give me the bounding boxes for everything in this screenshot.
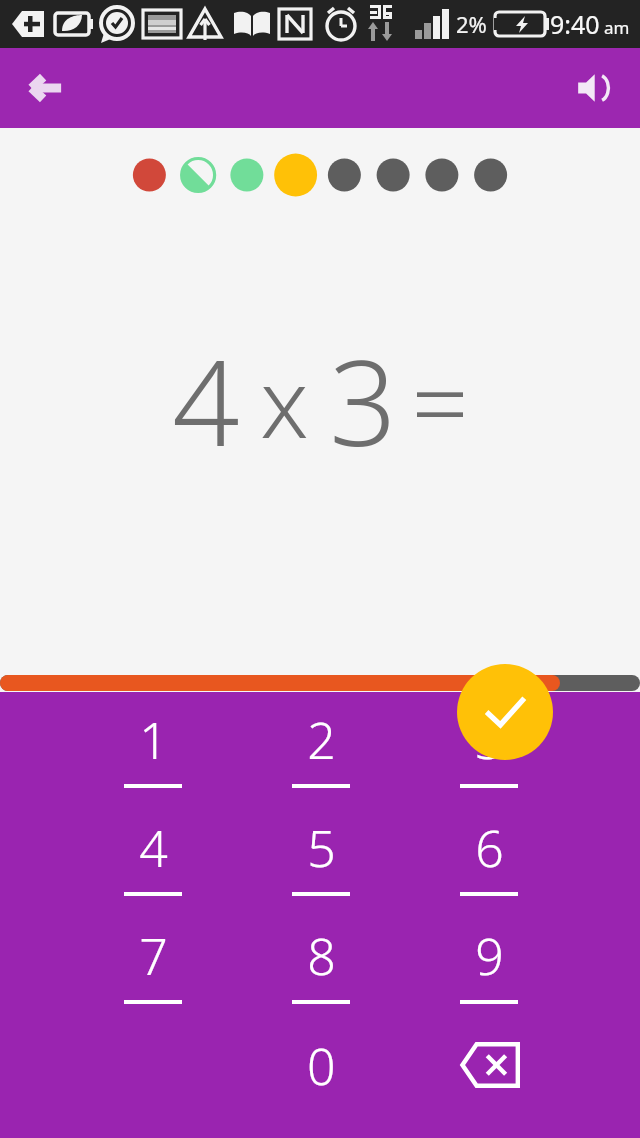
staticText: 0 [307, 1032, 336, 1100]
button[interactable]: Submit answer [457, 664, 553, 760]
button[interactable]: Backspace [405, 1030, 573, 1138]
button[interactable]: 4 [68, 814, 237, 922]
staticText: 3 [329, 320, 397, 481]
staticText: 5 [307, 814, 336, 882]
staticText: am [604, 16, 630, 39]
staticText: 8 [307, 922, 336, 990]
staticText: 9:40 [550, 7, 600, 41]
staticText: = [411, 333, 469, 469]
button[interactable]: 2 [237, 706, 405, 814]
staticText: 2 [307, 706, 336, 774]
button[interactable]: Back [14, 56, 78, 120]
staticText: 6 [475, 814, 504, 882]
button[interactable]: 0 [237, 1030, 405, 1138]
button[interactable]: 6 [405, 814, 573, 922]
staticText: 7 [139, 922, 168, 990]
button[interactable]: Sound [562, 56, 626, 120]
staticText: 1 [139, 706, 168, 774]
button[interactable]: 8 [237, 922, 405, 1030]
button[interactable]: 9 [405, 922, 573, 1030]
button[interactable]: 5 [237, 814, 405, 922]
staticText: 3 [475, 706, 504, 774]
button[interactable]: 3 [405, 706, 573, 814]
button[interactable]: 7 [68, 922, 237, 1030]
staticText: x [260, 335, 309, 466]
staticText: 4 [172, 320, 240, 481]
button[interactable]: 1 [68, 706, 237, 814]
staticText: 4 [139, 814, 168, 882]
staticText: 2% [456, 9, 487, 39]
staticText: 9 [475, 922, 504, 990]
